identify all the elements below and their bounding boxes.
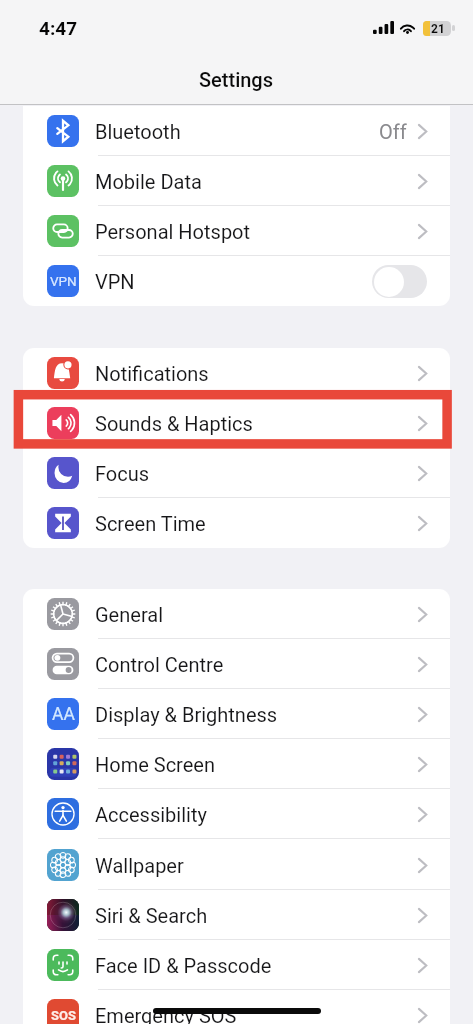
staticText: Off bbox=[379, 120, 407, 143]
button[interactable]: AA bbox=[23, 689, 450, 739]
button[interactable]: VPN toggle, off bbox=[372, 265, 427, 298]
staticText: General bbox=[95, 603, 164, 626]
staticText: 21 bbox=[431, 22, 445, 36]
staticText: Control Centre bbox=[95, 653, 224, 676]
staticText: Emergency SOS bbox=[95, 1004, 237, 1024]
staticText: Screen Time bbox=[95, 512, 206, 535]
staticText: Settings bbox=[199, 68, 274, 91]
button[interactable]: SOS bbox=[23, 990, 450, 1024]
button[interactable]: Accessibility bbox=[23, 789, 450, 839]
button[interactable]: Siri & Search bbox=[23, 890, 450, 940]
staticText: SOS bbox=[51, 1008, 76, 1023]
button[interactable]: Home Screen bbox=[23, 739, 450, 789]
button[interactable]: Screen Time bbox=[23, 498, 450, 548]
button[interactable]: Mobile Data bbox=[23, 156, 450, 206]
staticText: Siri & Search bbox=[95, 904, 208, 927]
button[interactable]: Control Centre bbox=[23, 639, 450, 689]
staticText: Display & Brightness bbox=[95, 703, 278, 726]
button[interactable]: Wallpaper bbox=[23, 840, 450, 890]
staticText: VPN bbox=[50, 273, 77, 289]
button[interactable]: Face ID & Passcode bbox=[23, 940, 450, 990]
staticText: Focus bbox=[95, 462, 150, 485]
staticText: 4:47 bbox=[39, 17, 78, 39]
staticText: Notifications bbox=[95, 362, 209, 385]
staticText: Wallpaper bbox=[95, 854, 184, 877]
staticText: Home Screen bbox=[95, 753, 215, 776]
staticText: Sounds & Haptics bbox=[95, 412, 253, 435]
staticText: AA bbox=[52, 704, 75, 725]
staticText: VPN bbox=[95, 270, 135, 293]
staticText: Bluetooth bbox=[95, 120, 181, 143]
button[interactable]: Notifications bbox=[23, 348, 450, 398]
staticText: Mobile Data bbox=[95, 170, 202, 193]
button[interactable]: General bbox=[23, 589, 450, 639]
button[interactable]: Personal Hotspot bbox=[23, 206, 450, 256]
button[interactable]: Focus bbox=[23, 448, 450, 498]
button[interactable]: Sounds & Haptics bbox=[23, 398, 450, 448]
staticText: Accessibility bbox=[95, 803, 207, 826]
button[interactable]: Bluetooth bbox=[23, 106, 450, 156]
staticText: Personal Hotspot bbox=[95, 220, 251, 243]
button[interactable]: VPN bbox=[23, 256, 450, 306]
staticText: Face ID & Passcode bbox=[95, 954, 272, 977]
